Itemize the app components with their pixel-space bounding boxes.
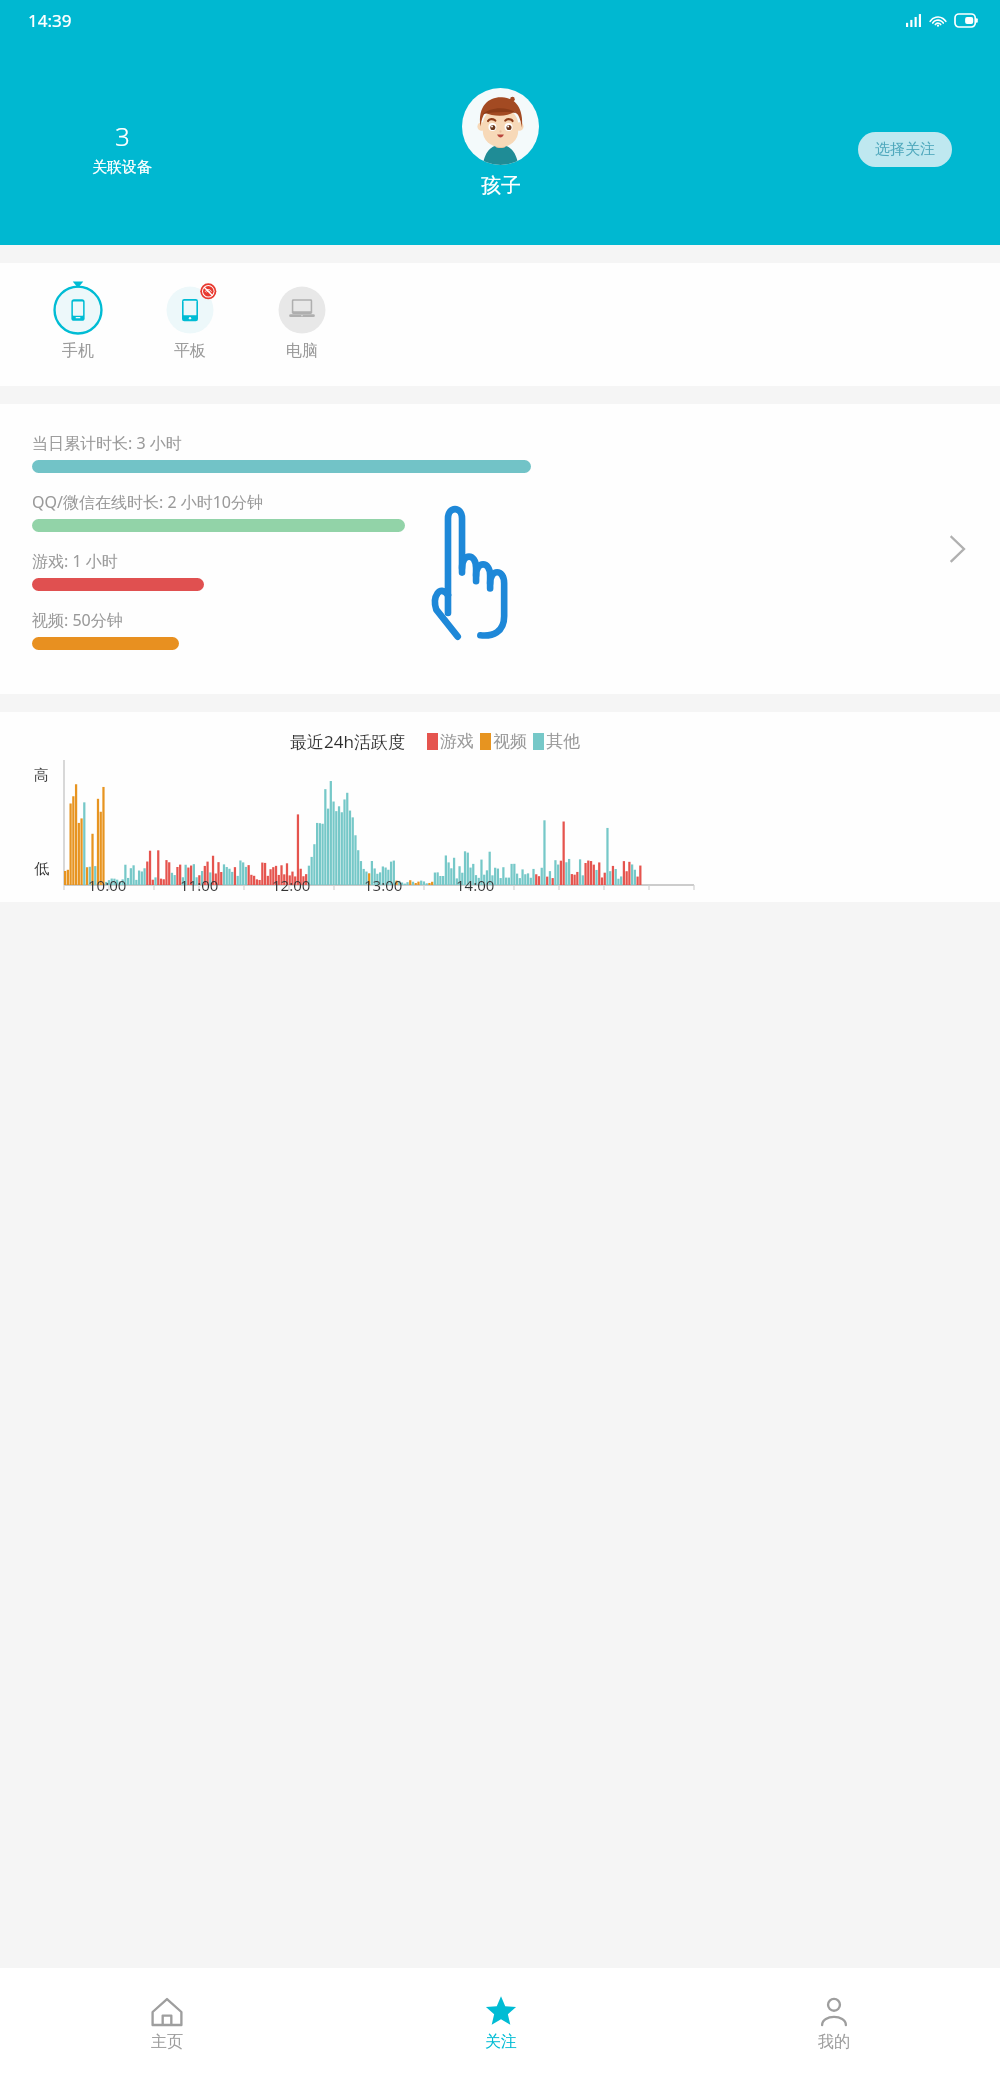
button[interactable]: 电脑 — [266, 272, 338, 361]
staticText: 其他 — [546, 731, 580, 752]
staticText: 关联设备 — [92, 158, 152, 177]
staticText: 13:00 — [364, 875, 403, 895]
staticText: 低 — [34, 860, 49, 879]
button[interactable]: 3 — [92, 118, 152, 177]
button[interactable]: 平板 — [154, 272, 226, 361]
button[interactable]: 选择关注 — [858, 132, 952, 167]
staticText: 游戏 — [440, 731, 474, 752]
staticText: 11:00 — [180, 875, 219, 895]
staticText: 高 — [34, 766, 49, 785]
staticText: 手机 — [62, 341, 94, 361]
staticText: 我的 — [818, 2032, 850, 2052]
staticText: 视频 — [493, 731, 527, 752]
staticText: 电脑 — [286, 341, 318, 361]
staticText: 14:00 — [456, 875, 495, 895]
button[interactable]: 当日累计时长: 3 小时 — [0, 404, 1000, 694]
staticText: 平板 — [174, 341, 206, 361]
staticText: 主页 — [151, 2032, 183, 2052]
other: 查看详情 — [949, 534, 966, 564]
button[interactable]: 孩子 — [462, 88, 539, 198]
staticText: 孩子 — [481, 173, 521, 198]
staticText: 当日累计时长: 3 小时 — [32, 432, 182, 454]
staticText: 3 — [115, 118, 130, 153]
staticText: 12:00 — [272, 875, 311, 895]
staticText: 最近24h活跃度 — [290, 730, 405, 753]
staticText: 视频: 50分钟 — [32, 609, 123, 631]
button[interactable]: 关注 — [334, 1968, 667, 2078]
staticText: 14:39 — [28, 9, 72, 32]
staticText: 游戏: 1 小时 — [32, 550, 118, 572]
button[interactable]: 最近24h活跃度 — [0, 712, 1000, 902]
staticText: 选择关注 — [875, 140, 935, 159]
staticText: 10:00 — [88, 875, 127, 895]
button[interactable]: 主页 — [0, 1968, 334, 2078]
staticText: QQ/微信在线时长: 2 小时10分钟 — [32, 491, 264, 513]
button[interactable]: 手机 — [42, 272, 114, 361]
staticText: 关注 — [485, 2032, 517, 2052]
button[interactable]: 我的 — [667, 1968, 1000, 2078]
